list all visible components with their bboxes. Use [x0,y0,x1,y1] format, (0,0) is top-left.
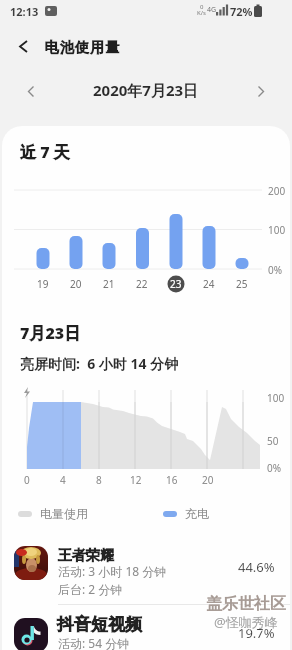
staticText: 4 [60,473,66,487]
button[interactable] [248,78,274,104]
staticText: 12:13 [10,4,39,19]
staticText: 盖乐世社区 [206,594,286,614]
staticText: 16 [166,473,178,487]
staticText: @怪咖秀峰 [214,613,278,631]
staticText: 22 [136,277,148,291]
staticText: 72% [230,4,253,19]
button[interactable] [2,540,290,604]
staticText: 后台: 2 分钟 [58,581,123,597]
staticText: 20 [202,473,214,487]
staticText: 抖音短视频 [57,614,142,635]
staticText: 4G [207,5,217,15]
staticText: 200 [268,184,286,198]
staticText: 44.6% [238,558,275,576]
staticText: K/s [197,9,206,17]
staticText: 23 [170,277,182,291]
staticText: 8 [96,473,102,487]
staticText: 2020年7月23日 [93,80,199,100]
staticText: 0% [268,263,283,277]
staticText: 19.7% [238,624,275,642]
staticText: 12 [130,473,142,487]
staticText: 电池使用量 [44,39,120,57]
button[interactable] [2,606,290,650]
staticText: 19 [37,277,49,291]
staticText: 100 [268,223,286,237]
staticText: 充电 [185,506,209,521]
staticText: 亮屏时间: 6 小时 14 分钟 [20,354,179,373]
staticText: 50 [267,434,279,448]
staticText: 24 [203,277,215,291]
button[interactable] [18,78,44,104]
button[interactable] [8,33,38,59]
staticText: 近 7 天 [20,141,70,163]
staticText: 20 [70,277,82,291]
staticText: 21 [103,277,115,291]
staticText: 活动: 3 小时 18 分钟 [58,563,167,579]
staticText: 电量使用 [40,506,88,521]
staticText: 25 [236,277,248,291]
staticText: 0% [267,461,282,475]
staticText: 活动: 54 分钟 [58,635,130,650]
staticText: 100 [267,391,285,405]
staticText: 0 [24,473,30,487]
staticText: 王者荣耀 [58,547,114,565]
staticText: 0 [200,3,204,11]
staticText: 7月23日 [20,322,81,344]
